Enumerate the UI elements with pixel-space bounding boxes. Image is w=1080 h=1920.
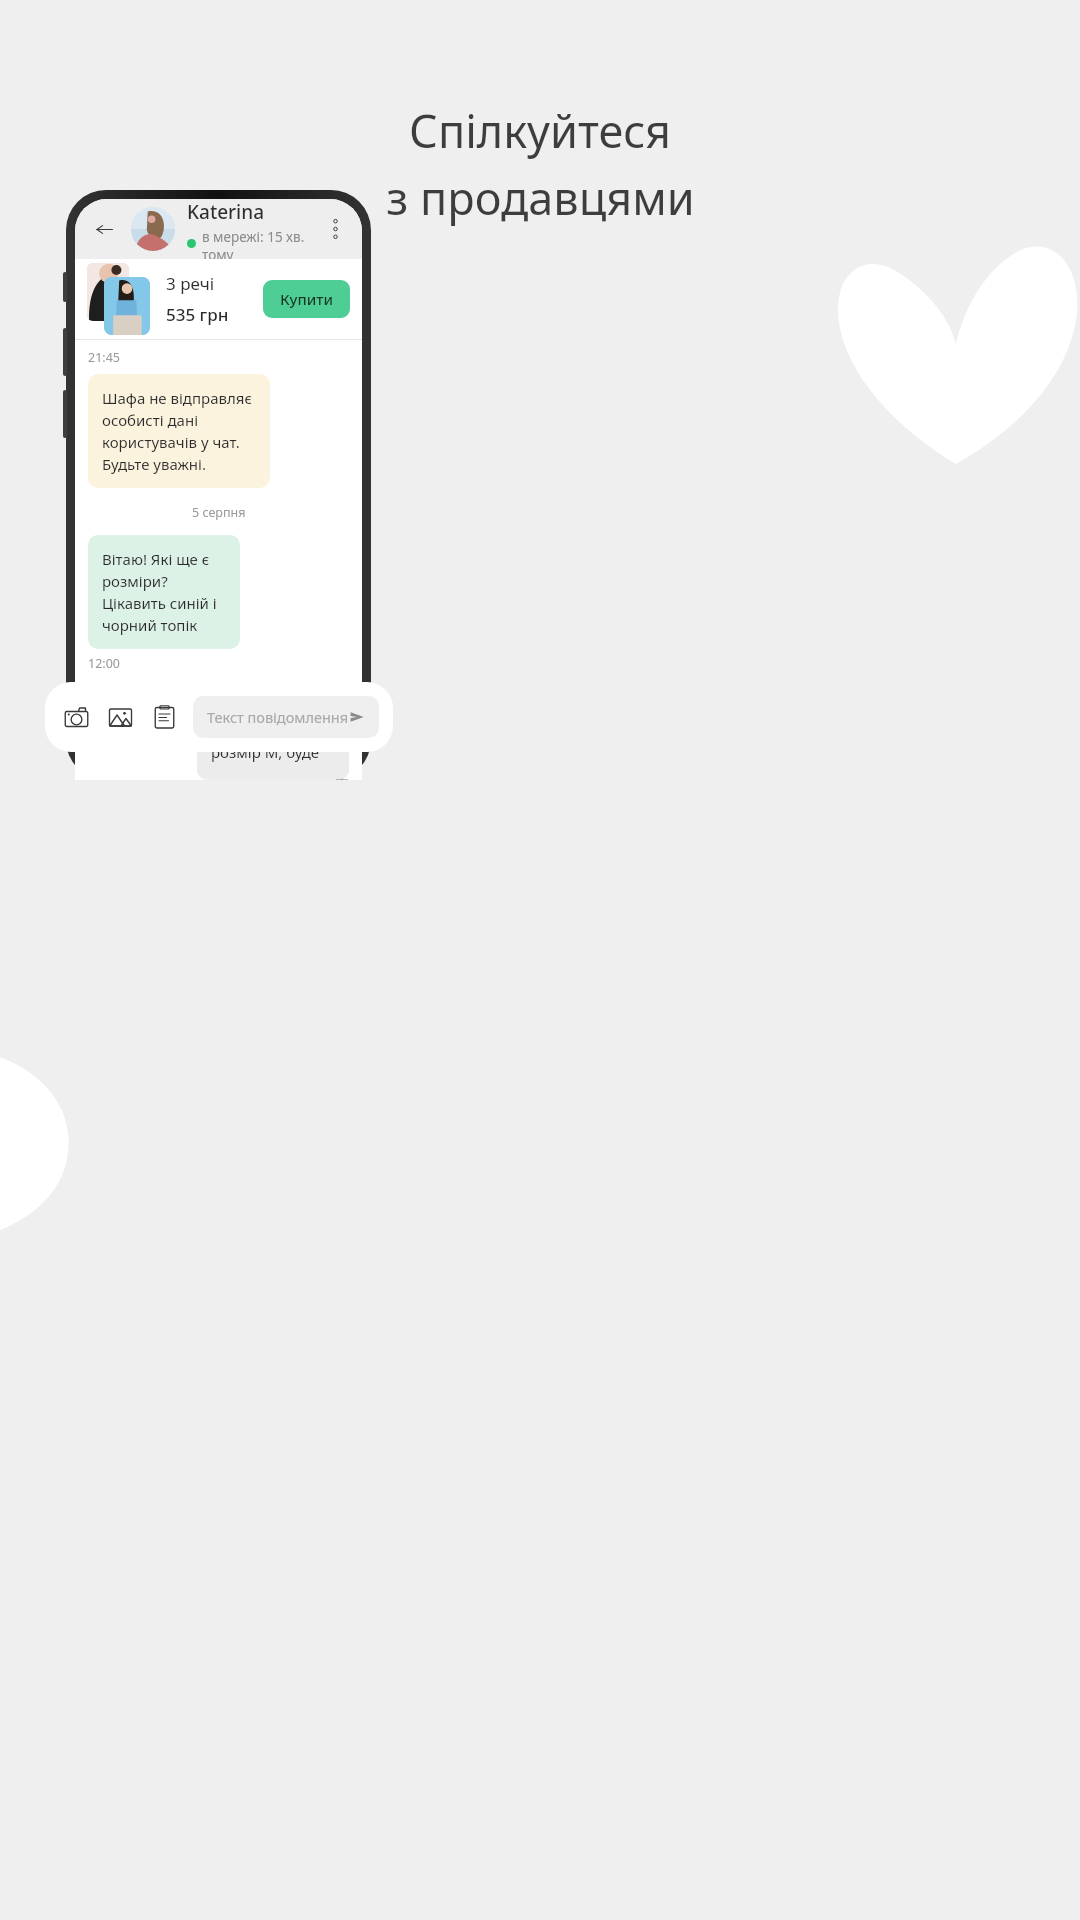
button[interactable]: Camera <box>59 700 93 734</box>
staticText: 3 речі <box>166 272 215 295</box>
button[interactable]: Gallery <box>103 700 137 734</box>
button[interactable]: Order <box>147 700 181 734</box>
button[interactable]: Купити <box>263 280 350 318</box>
staticText: з продавцями <box>386 167 695 228</box>
button[interactable]: Шафа не відправляє особисті дані користу… <box>88 374 270 488</box>
staticText: 535 грн <box>166 303 229 326</box>
button[interactable]: More options <box>320 214 350 244</box>
button[interactable]: Вітаю! Залишився розмір M, буде оверсайз… <box>197 684 349 780</box>
button[interactable]: Back <box>87 212 121 246</box>
button[interactable]: Send <box>349 706 365 728</box>
staticText: Спілкуйтеся <box>409 100 671 161</box>
staticText: Katerina <box>187 199 265 225</box>
staticText: 21:45 <box>88 349 120 366</box>
button[interactable]: Текст повідомлення <box>193 696 379 738</box>
staticText: Текст повідомлення <box>207 707 349 727</box>
staticText: 12:00 <box>88 655 120 672</box>
staticText: 5 серпня <box>192 504 246 521</box>
staticText: Шафа не відправляє особисті дані користу… <box>102 388 256 474</box>
button[interactable]: Вітаю! Які ще є розміри? Цікавить синій … <box>88 535 240 649</box>
staticText: Вітаю! Залишився розмір M, буде оверсайз… <box>211 698 335 766</box>
staticText: Купити <box>280 289 333 309</box>
staticText: в мережі: 15 хв. тому <box>202 228 320 259</box>
staticText: Вітаю! Які ще є розміри? Цікавить синій … <box>102 549 226 635</box>
